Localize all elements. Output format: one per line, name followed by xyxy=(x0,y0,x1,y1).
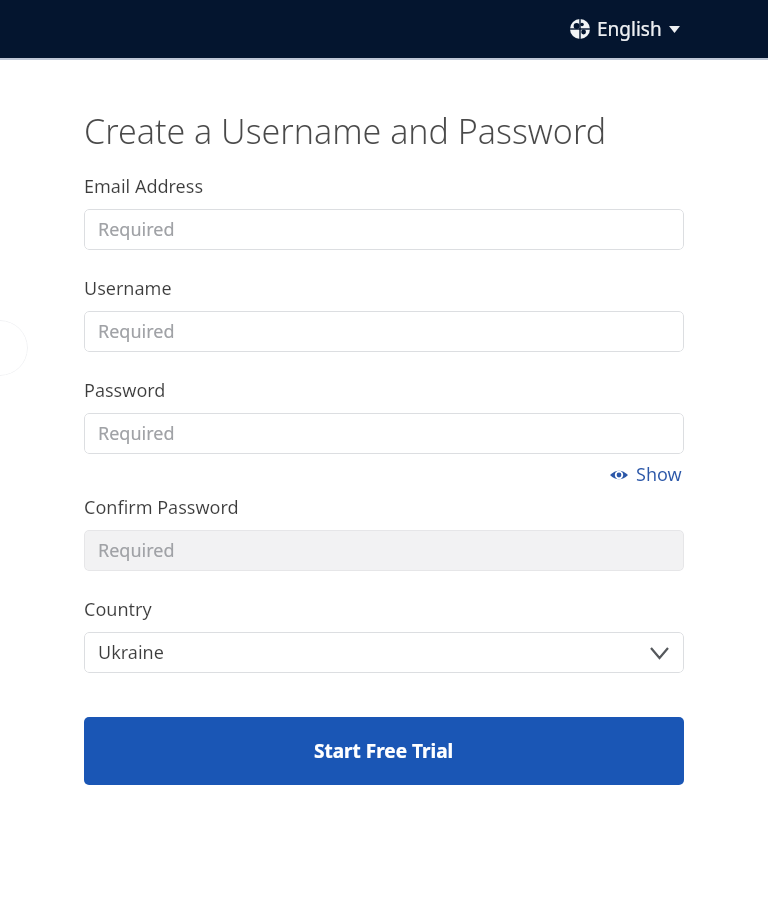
button[interactable]: Start Free Trial xyxy=(84,717,684,785)
button[interactable]: Required xyxy=(84,311,684,352)
staticText: Required xyxy=(98,421,175,446)
staticText: Create a Username and Password xyxy=(84,108,607,154)
staticText: Required xyxy=(98,217,175,242)
staticText: Required xyxy=(98,319,175,344)
staticText: Confirm Password xyxy=(84,495,239,520)
button[interactable]: Required xyxy=(84,209,684,250)
button[interactable]: Show password xyxy=(608,460,684,489)
other: Show password xyxy=(610,468,628,482)
staticText: Show xyxy=(636,462,682,487)
staticText: Start Free Trial xyxy=(314,738,454,764)
staticText: Password xyxy=(84,378,166,403)
staticText: Ukraine xyxy=(98,640,164,665)
button[interactable]: Required xyxy=(84,413,684,454)
staticText: Email Address xyxy=(84,174,204,199)
button[interactable]: English xyxy=(566,12,684,46)
button: Required xyxy=(84,530,684,571)
staticText: Username xyxy=(84,276,172,301)
staticText: English xyxy=(597,16,662,42)
staticText: Required xyxy=(98,538,175,563)
staticText: Country xyxy=(84,597,152,622)
button[interactable]: Ukraine xyxy=(84,632,684,673)
